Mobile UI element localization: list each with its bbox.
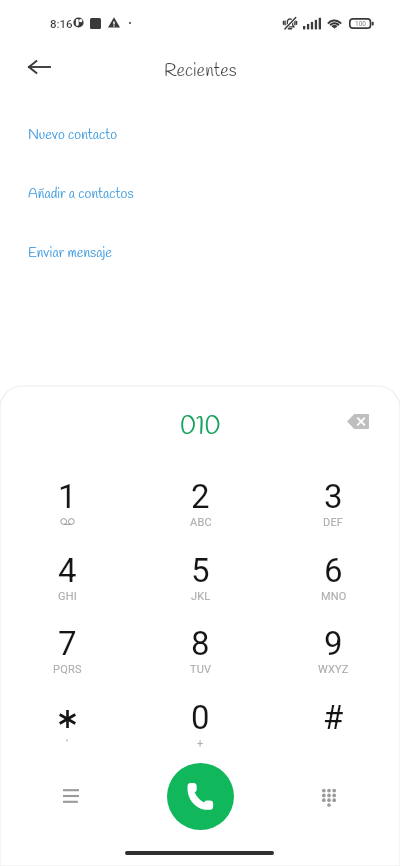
button[interactable]: 9	[267, 624, 400, 694]
staticText: 0	[191, 698, 210, 737]
staticText: +	[197, 737, 204, 750]
button[interactable]: Enviar mensaje	[0, 238, 400, 268]
staticText: 5	[191, 551, 210, 590]
button[interactable]: 8	[134, 624, 267, 694]
button[interactable]: Menú	[48, 773, 93, 818]
button[interactable]: 5	[134, 551, 267, 621]
button[interactable]: Borrar	[335, 399, 380, 444]
button[interactable]: Añadir a contactos	[0, 179, 400, 209]
staticText: 8	[191, 624, 210, 663]
button[interactable]: 2	[134, 477, 267, 547]
button[interactable]: 7	[0, 624, 134, 694]
staticText: PQRS	[53, 663, 82, 676]
button[interactable]: Teclado	[306, 775, 351, 820]
staticText: 8:16	[50, 17, 73, 30]
staticText: Recientes	[164, 59, 237, 83]
button[interactable]: 1	[0, 477, 134, 547]
button[interactable]: #	[267, 698, 400, 768]
staticText: 9	[324, 624, 343, 663]
staticText: 4	[58, 551, 77, 590]
staticText: WXYZ	[318, 663, 349, 676]
button[interactable]: '	[0, 698, 134, 768]
staticText: DEF	[323, 516, 344, 529]
staticText: Añadir a contactos	[28, 185, 134, 204]
staticText: Nuevo contacto	[28, 126, 118, 145]
staticText: 6	[324, 551, 343, 590]
staticText: GHI	[58, 590, 77, 603]
staticText: '	[66, 737, 69, 750]
button[interactable]: 4	[0, 551, 134, 621]
staticText: 1	[58, 477, 77, 516]
staticText: 010	[180, 411, 221, 444]
staticText: Enviar mensaje	[28, 244, 112, 263]
staticText: 2	[191, 477, 210, 516]
staticText: TUV	[190, 663, 212, 676]
button[interactable]: Llamar	[167, 763, 234, 830]
button[interactable]: Nuevo contacto	[0, 120, 400, 150]
staticText: MNO	[321, 590, 347, 603]
staticText: JKL	[191, 590, 211, 603]
staticText: 100	[355, 20, 366, 28]
staticText: #	[323, 698, 344, 737]
staticText: 3	[324, 477, 343, 516]
button[interactable]: 0	[134, 698, 267, 768]
staticText: ABC	[190, 516, 212, 529]
staticText: 7	[58, 624, 77, 663]
button[interactable]: Atrás	[16, 44, 62, 90]
button[interactable]: 3	[267, 477, 400, 547]
button[interactable]: 6	[267, 551, 400, 621]
